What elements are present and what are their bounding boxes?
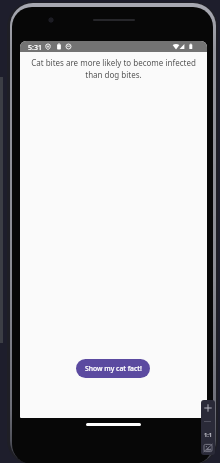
staticText: 1:1 bbox=[204, 431, 212, 439]
button[interactable]: Show my cat fact! bbox=[76, 359, 150, 378]
staticText: Show my cat fact! bbox=[85, 364, 142, 373]
button[interactable]: Zoom in bbox=[201, 400, 215, 416]
staticText: 5:31 bbox=[28, 43, 42, 53]
button[interactable]: Fit to window bbox=[201, 441, 215, 455]
staticText: Cat bites are more likely to become infe… bbox=[31, 57, 196, 80]
button[interactable]: 1:1 bbox=[201, 428, 215, 442]
